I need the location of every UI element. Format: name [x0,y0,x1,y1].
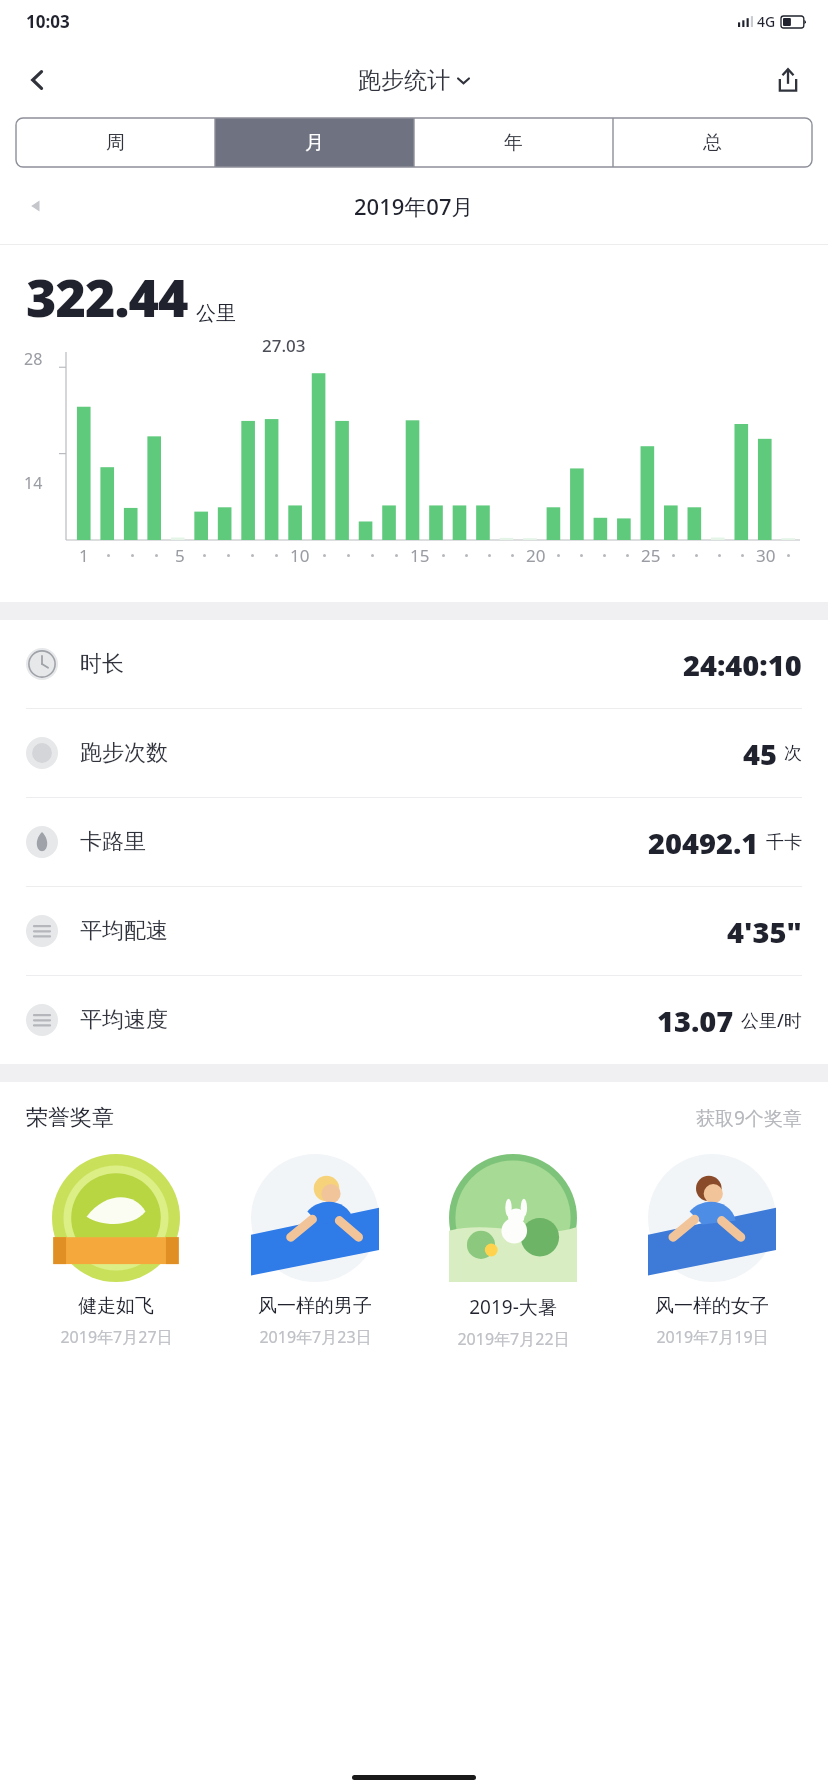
button[interactable]: Share [762,54,814,106]
button[interactable]: 时长 [0,620,828,708]
button[interactable]: Back [12,54,64,106]
staticText: 20 [526,544,546,567]
button[interactable]: 风一样的男子 [220,1154,410,1348]
button[interactable]: 健走如飞 [21,1154,211,1348]
staticText: 月 [305,131,324,155]
staticText: 10:03 [26,10,70,33]
staticText: 2019-大暑 [469,1294,557,1320]
staticText: 平均速度 [80,1006,168,1034]
button[interactable]: 总 [613,118,812,167]
staticText: 28 [24,348,43,370]
staticText: 14 [24,472,43,494]
staticText: 年 [504,131,523,155]
button[interactable]: 2019-大暑 [418,1154,608,1350]
staticText: 25 [641,544,661,567]
staticText: 10 [290,544,310,567]
staticText: 2019年7月19日 [656,1326,769,1348]
staticText: 5 [175,544,185,567]
staticText: 1 [79,544,89,567]
staticText: 周 [106,131,125,155]
staticText: 千卡 [766,831,802,854]
staticText: 20492.1 [648,823,759,862]
button[interactable]: Previous month [14,184,58,228]
button[interactable]: 年 [414,118,613,167]
button[interactable]: 平均配速 [0,887,828,975]
button[interactable]: 跑步次数 [0,709,828,797]
staticText: 风一样的女子 [655,1294,769,1318]
staticText: 公里 [196,301,236,326]
button[interactable]: 平均速度 [0,976,828,1064]
staticText: 卡路里 [80,828,146,856]
staticText: 时长 [80,650,124,678]
staticText: 总 [703,131,722,155]
staticText: 4G [757,12,776,31]
staticText: 30 [756,544,776,567]
staticText: 15 [410,544,430,567]
staticText: 跑步次数 [80,739,168,767]
staticText: 健走如飞 [78,1294,154,1318]
staticText: 4'35" [727,912,802,951]
staticText: 平均配速 [80,917,168,945]
staticText: 322.44 [26,261,188,332]
button[interactable]: 获取9个奖章 [696,1105,802,1131]
staticText: 跑步统计 [358,66,450,95]
staticText: 2019年7月27日 [60,1326,173,1348]
staticText: 2019年7月22日 [457,1328,570,1350]
button[interactable]: 跑步统计 [358,66,470,95]
staticText: 27.03 [262,334,306,357]
staticText: 次 [784,742,802,765]
staticText: 2019年07月 [354,191,474,221]
button[interactable]: 卡路里 [0,798,828,886]
staticText: 24:40:10 [683,645,802,684]
button[interactable]: 周 [16,118,215,167]
staticText: 公里/时 [741,1008,802,1033]
button[interactable]: 月 [215,118,414,167]
staticText: 13.07 [657,1001,734,1040]
staticText: 风一样的男子 [258,1294,372,1318]
staticText: 2019年7月23日 [259,1326,372,1348]
button[interactable]: 风一样的女子 [617,1154,807,1348]
staticText: 荣誉奖章 [26,1104,114,1132]
staticText: 45 [743,734,777,773]
